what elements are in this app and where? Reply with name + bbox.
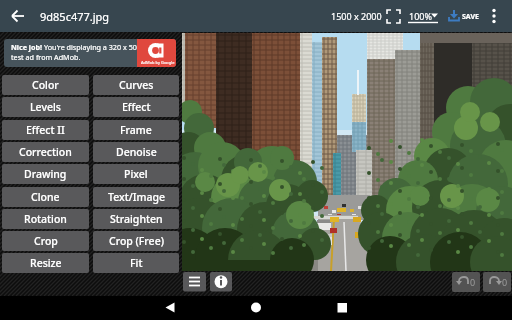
button[interactable]: Nice job! You're displaying a 320 x 50 t… — [4, 39, 176, 67]
staticText: Clone — [31, 190, 60, 204]
staticText: Pixel — [124, 167, 148, 181]
staticText: 0 — [502, 276, 508, 288]
staticText: Color — [32, 78, 59, 92]
button[interactable] — [486, 4, 504, 28]
button[interactable]: Crop — [2, 231, 89, 251]
button[interactable] — [383, 6, 404, 27]
button[interactable] — [236, 296, 276, 320]
staticText: Resize — [30, 256, 62, 270]
staticText: 9d85c477.jpg — [40, 9, 110, 24]
staticText: Crop — [34, 234, 58, 248]
staticText: Denoise — [116, 145, 157, 159]
staticText: AdMob by Google — [141, 60, 175, 65]
button[interactable]: Denoise — [93, 142, 179, 162]
staticText: Effect — [122, 100, 151, 114]
button[interactable]: 0 — [452, 272, 480, 292]
staticText: 0 — [470, 276, 476, 288]
button[interactable]: 100% — [406, 5, 440, 27]
staticText: Text/Image — [108, 190, 165, 204]
staticText: Correction — [19, 145, 72, 159]
button[interactable]: Frame — [93, 120, 179, 140]
button[interactable] — [210, 272, 232, 292]
button[interactable] — [322, 296, 362, 320]
button[interactable]: Straighten — [93, 209, 179, 229]
staticText: Rotation — [24, 212, 67, 226]
staticText: Straighten — [110, 212, 163, 226]
staticText: Effect II — [26, 123, 65, 137]
button[interactable]: Crop (Free) — [93, 231, 179, 251]
button[interactable]: Levels — [2, 97, 89, 117]
button[interactable]: Color — [2, 75, 89, 95]
button[interactable]: SAVE — [446, 4, 478, 28]
staticText: Nice job! You're displaying a 320 x 50 t… — [11, 42, 137, 62]
staticText: 100% — [409, 10, 432, 22]
button[interactable] — [183, 272, 206, 292]
button[interactable]: Correction — [2, 142, 89, 162]
staticText: Frame — [120, 123, 152, 137]
button[interactable]: Drawing — [2, 164, 89, 184]
button[interactable]: Curves — [93, 75, 179, 95]
staticText: SAVE — [462, 12, 479, 22]
button[interactable]: 0 — [483, 272, 511, 292]
button[interactable]: Pixel — [93, 164, 179, 184]
button[interactable]: Fit — [93, 253, 179, 273]
staticText: Crop (Free) — [109, 234, 164, 248]
staticText: 1500 x 2000 — [331, 10, 382, 22]
button[interactable]: Effect — [93, 97, 179, 117]
staticText: Fit — [130, 256, 143, 270]
button[interactable]: Rotation — [2, 209, 89, 229]
button[interactable] — [6, 4, 32, 28]
staticText: Levels — [30, 100, 61, 114]
button[interactable]: Resize — [2, 253, 89, 273]
button[interactable]: Text/Image — [93, 187, 179, 207]
button[interactable]: Clone — [2, 187, 89, 207]
staticText: Drawing — [24, 167, 67, 181]
button[interactable]: Effect II — [2, 120, 89, 140]
staticText: Curves — [119, 78, 154, 92]
button[interactable] — [150, 296, 190, 320]
